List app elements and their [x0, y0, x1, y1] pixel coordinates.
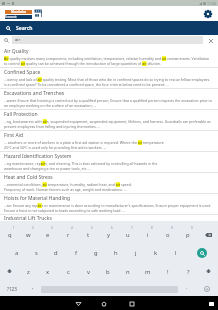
staticText: Hoists for Material Handling [4, 195, 71, 202]
button[interactable]: ?123 [0, 279, 24, 296]
button[interactable]: Heat and Cold Stress [0, 173, 218, 194]
staticText: i [147, 231, 149, 239]
staticText: 9 [171, 226, 173, 230]
staticText: w [26, 231, 31, 239]
staticText: ...tor. Ensure any repairs or maintenanc… [4, 203, 214, 208]
staticText: ...ng maintenance, repairs, and cleaning… [4, 161, 158, 166]
button[interactable]: Emoji [195, 279, 218, 296]
staticText: 1 [13, 226, 15, 230]
button[interactable]: 7 [118, 224, 138, 241]
staticText: j [135, 249, 137, 257]
button[interactable]: 9 [158, 224, 178, 241]
staticText: e [46, 231, 50, 239]
button[interactable]: n [118, 260, 138, 279]
staticText: warehouse and changing a tire or power t… [4, 166, 92, 171]
staticText: is a confined space? To be considered a … [4, 82, 169, 87]
staticText: Manitoba [11, 10, 27, 14]
button[interactable]: 3 [38, 224, 58, 241]
staticText: u [126, 231, 130, 239]
staticText: m [145, 268, 151, 276]
button[interactable]: Back [71, 296, 85, 310]
button[interactable]: x [38, 260, 58, 279]
staticText: s [35, 249, 38, 257]
button[interactable]: Home [97, 296, 111, 310]
staticText: g [94, 249, 98, 257]
staticText: ? [187, 268, 190, 276]
button[interactable]: Fall Protection [0, 110, 218, 131]
staticText: First Aid [4, 132, 24, 139]
staticText: ...iciency and lack of air quality testi… [4, 77, 214, 82]
button[interactable]: Shift [0, 260, 19, 279]
button[interactable]: l [166, 241, 186, 260]
button[interactable]: Hazard Identification System [0, 152, 218, 173]
button[interactable]: ? [178, 260, 198, 279]
button[interactable]: 0 [178, 224, 198, 241]
button[interactable]: Search [4, 24, 13, 33]
button[interactable]: s [26, 241, 46, 260]
button[interactable]: j [126, 241, 146, 260]
button[interactable]: , [24, 279, 41, 296]
staticText: f [75, 249, 77, 257]
staticText: air [15, 37, 21, 43]
staticText: t [87, 231, 90, 239]
button[interactable]: Recent apps [125, 296, 139, 310]
button[interactable]: Industrial Lift Trucks [0, 215, 218, 221]
button[interactable]: k [146, 241, 166, 260]
staticText: y [107, 231, 110, 239]
staticText: prevent employees from falling and injur… [4, 124, 101, 129]
button[interactable]: c [58, 260, 78, 279]
staticText: 11:08 [207, 1, 216, 6]
button[interactable]: Hoists for Material Handling [0, 194, 218, 215]
staticText: Air Quality [4, 48, 29, 55]
button[interactable]: Search [186, 241, 218, 260]
staticText: 5 [91, 226, 93, 230]
staticText: Air quality involves many components, in… [4, 56, 214, 61]
button[interactable]: z [19, 260, 38, 279]
button[interactable]: 4 [58, 224, 78, 241]
button[interactable]: 1 [0, 224, 19, 241]
staticText: a [15, 249, 19, 257]
staticText: ! [167, 268, 169, 276]
button[interactable]: Clear search [207, 37, 214, 44]
staticText: ...water. Ensure that hoisting is carrie… [4, 98, 213, 103]
button[interactable]: f [66, 241, 86, 260]
button[interactable]: b [98, 260, 118, 279]
staticText: ... anothers or more of workers in a pla… [4, 140, 164, 145]
button[interactable]: Confined Space [0, 68, 218, 89]
button[interactable]: 2 [19, 224, 38, 241]
button[interactable]: Shift [198, 260, 218, 279]
button[interactable]: d [46, 241, 66, 260]
button[interactable]: v [78, 260, 98, 279]
staticText: an employee working on the surface of an… [4, 103, 97, 108]
button[interactable]: Excavations and Trenches [0, 89, 218, 110]
button[interactable]: Settings [201, 7, 214, 20]
staticText: Excavations and Trenches [4, 90, 65, 97]
button[interactable]: a [7, 241, 26, 260]
staticText: 4 [71, 226, 73, 230]
staticText: p [186, 231, 190, 239]
button[interactable]: h [106, 241, 126, 260]
staticText: ...onmental conditions, air temperature,… [4, 182, 132, 187]
button[interactable]: Air Quality [0, 47, 218, 68]
staticText: Search [16, 25, 33, 32]
staticText: Hazard Identification System [4, 153, 72, 160]
staticText: c [67, 268, 70, 276]
button[interactable]: ! [158, 260, 178, 279]
button[interactable]: 6 [98, 224, 118, 241]
staticText: Ensure a hoist is not subjected to loads… [4, 208, 126, 213]
staticText: Confined Space [4, 69, 41, 76]
staticText: q [8, 231, 12, 239]
button[interactable]: First Aid [0, 131, 218, 152]
button[interactable]: 5 [78, 224, 98, 241]
button[interactable]: air [12, 36, 203, 44]
button[interactable]: Backspace [198, 224, 218, 241]
staticText: k [154, 249, 158, 257]
staticText: ?123 [7, 286, 17, 292]
button[interactable]: g [86, 241, 106, 260]
button[interactable]: 8 [138, 224, 158, 241]
staticText: 8 [151, 226, 153, 230]
staticText: Frequency of work. Human factors such as… [4, 187, 127, 192]
button[interactable]: m [138, 260, 158, 279]
